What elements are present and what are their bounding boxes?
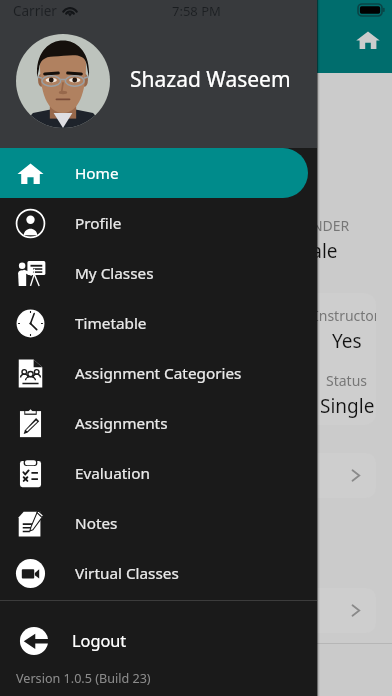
staticText: Yes [332,328,362,354]
staticText: Virtual Classes [75,563,179,584]
staticText: Assignment Categories [75,363,242,384]
button[interactable]: Classes [100,644,180,696]
staticText: 7:58 PM [172,2,221,20]
staticText: Logout [72,630,127,652]
staticText: My Classes [75,263,154,284]
button[interactable]: Notes [0,498,308,548]
staticText: GENDER [294,216,350,235]
staticText: Carrier [13,2,57,20]
other: Top app bar [0,0,392,73]
staticText: EMAIL [16,216,58,235]
staticText: Shazad Waseem [130,65,291,94]
staticText: Status [326,371,368,390]
staticText: Lahore [32,393,95,419]
staticText: Settings [32,600,93,622]
staticText: Home [75,163,119,184]
button[interactable]: Settings [16,588,376,633]
button[interactable]: Profile [0,198,308,248]
button[interactable]: Logout [0,617,317,665]
button[interactable]: Home [0,148,308,198]
staticText: Home [36,675,65,689]
staticText: Assignments [75,413,168,434]
button[interactable]: Virtual Classes [0,548,308,598]
staticText: Instructor [314,306,376,325]
staticText: N/A [32,328,66,354]
staticText: Notes [75,513,118,534]
staticText: Change Password [32,465,167,487]
button[interactable]: My Classes [0,248,308,298]
staticText: City [32,371,57,390]
staticText: Male [294,238,338,264]
staticText: Classes [123,675,158,689]
staticText: Father [32,306,75,325]
button[interactable]: Evaluation [0,448,308,498]
staticText: Single [320,393,375,419]
button[interactable]: Assignment Categories [0,348,308,398]
button[interactable]: Change Password [16,453,376,498]
staticText: test@mail.com [16,238,149,264]
staticText: Version 1.0.5 (Build 23) [16,670,151,687]
button[interactable]: Home [354,26,382,54]
staticText: Evaluation [75,463,151,484]
button[interactable]: Assignments [0,398,308,448]
staticText: Profile [75,213,122,234]
staticText: Timetable [75,313,147,334]
button[interactable]: Home [10,644,90,696]
button[interactable]: Timetable [0,298,308,348]
